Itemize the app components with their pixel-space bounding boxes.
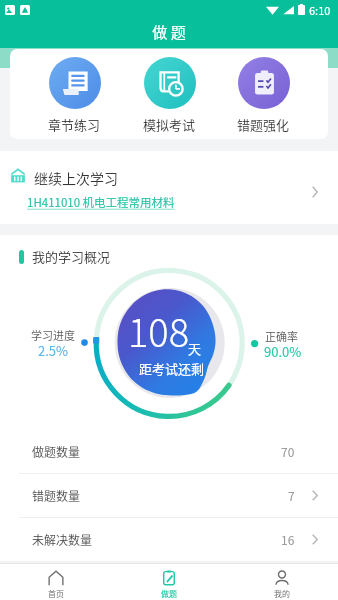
staticText: 我的 [274, 588, 290, 600]
button[interactable]: 做题 [112, 565, 225, 600]
staticText: 108 [128, 303, 189, 358]
staticText: 继续上次学习 [34, 168, 118, 188]
button[interactable]: 错题数量 [0, 474, 338, 517]
button[interactable]: 首页 [0, 565, 112, 600]
button[interactable]: 章节练习 [44, 57, 105, 134]
staticText: 未解决数量 [32, 531, 93, 548]
button[interactable]: 模拟考试 [139, 57, 200, 134]
staticText: 章节练习 [48, 115, 101, 134]
button[interactable]: 我的 [225, 565, 338, 600]
staticText: 1H411010 机电工程常用材料 [27, 194, 175, 211]
staticText: 天 [188, 339, 202, 358]
staticText: 7 [288, 487, 295, 504]
staticText: 首页 [48, 588, 64, 600]
staticText: 错题强化 [237, 115, 290, 134]
staticText: 正确率 [265, 328, 298, 344]
staticText: 模拟考试 [143, 115, 196, 134]
staticText: 70 [281, 443, 295, 460]
staticText: 我的学习概况 [32, 247, 111, 266]
staticText: 距考试还剩 [139, 359, 205, 378]
staticText: 做题数量 [32, 443, 81, 460]
staticText: 2.5% [38, 341, 69, 360]
staticText: 错题数量 [32, 487, 81, 504]
button[interactable]: 继续上次学习 [0, 151, 338, 224]
staticText: 做题 [161, 588, 177, 600]
staticText: 学习进度 [31, 327, 75, 343]
button[interactable]: 做题数量 [0, 430, 338, 473]
button[interactable]: 错题强化 [233, 57, 294, 134]
staticText: 90.0% [264, 342, 302, 361]
staticText: 16 [281, 531, 295, 548]
staticText: 做 题 [0, 21, 338, 43]
staticText: 6:10 [309, 2, 331, 18]
button[interactable]: 未解决数量 [0, 518, 338, 561]
